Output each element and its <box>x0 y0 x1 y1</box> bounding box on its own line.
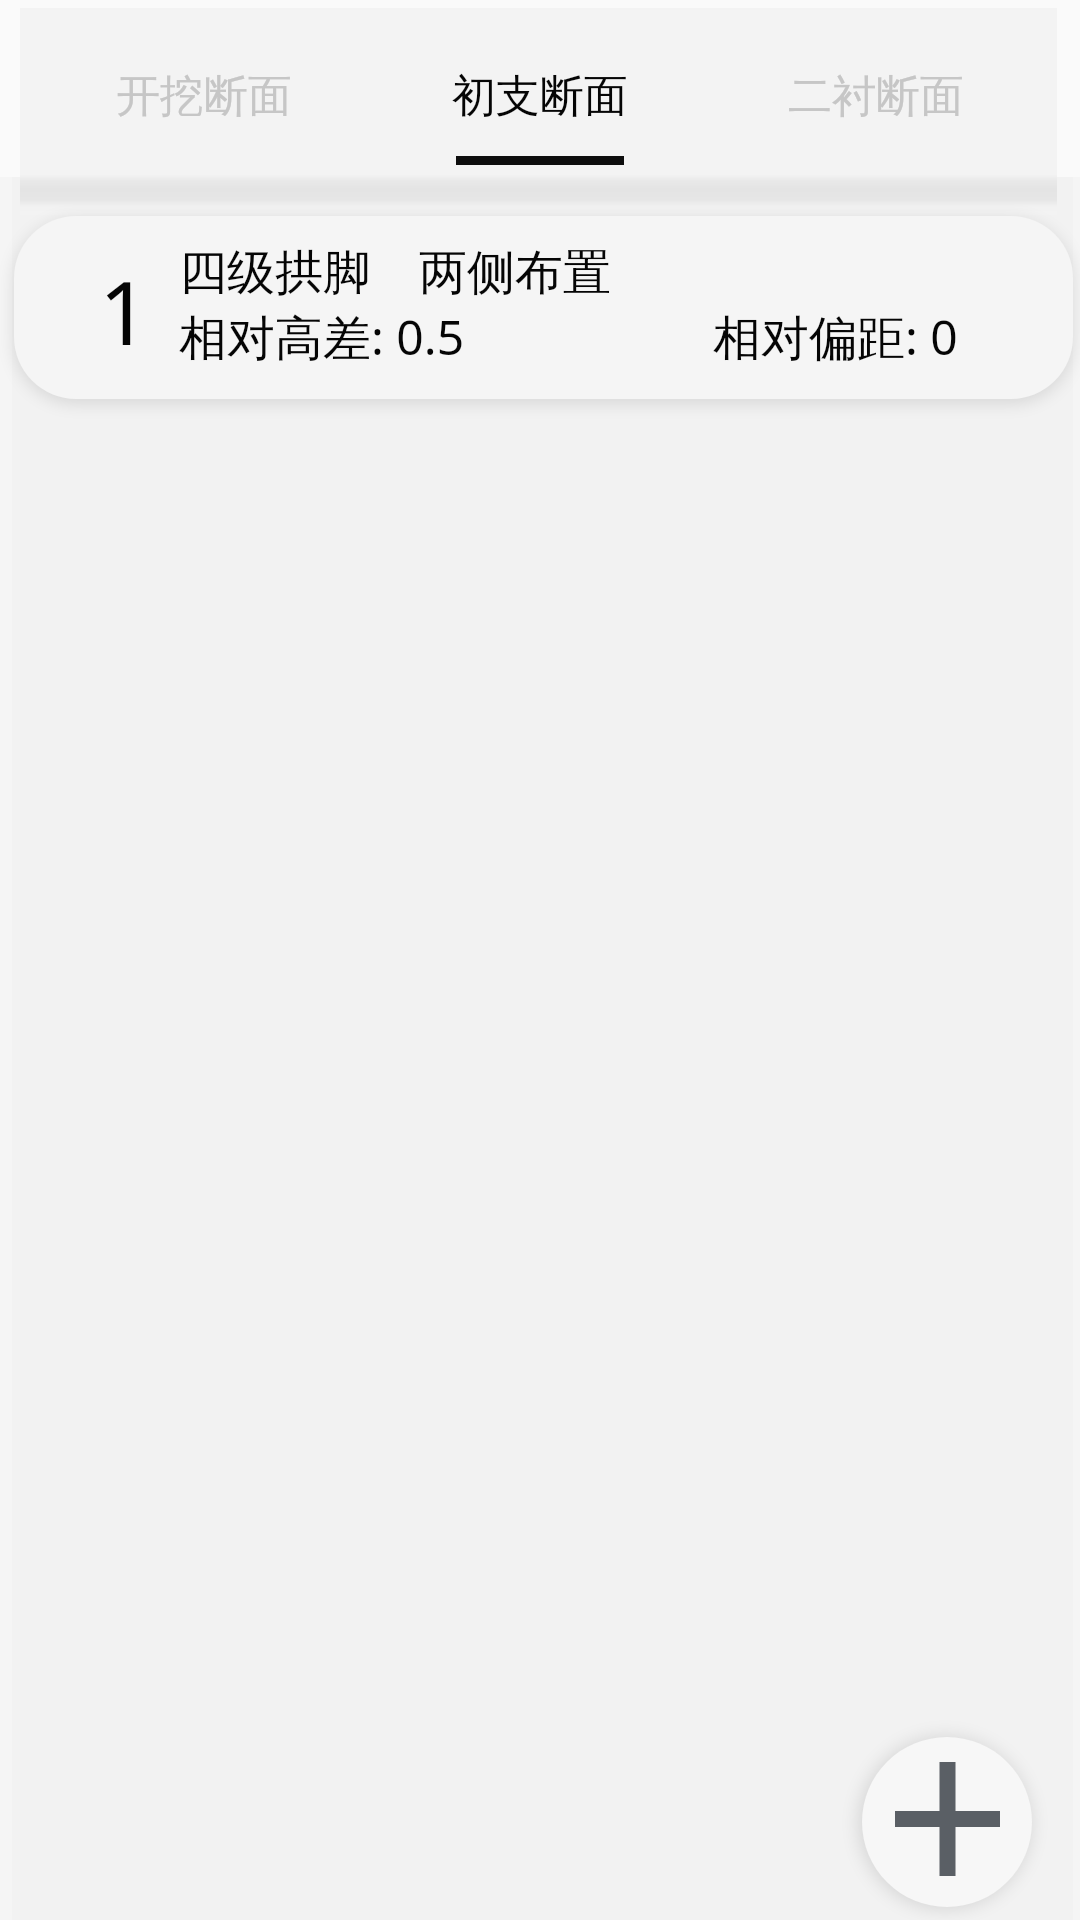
staticText: 1 <box>99 251 150 371</box>
staticText: 开挖断面 <box>116 69 292 124</box>
button[interactable]: 开挖断面 <box>36 8 372 177</box>
staticText: 二衬断面 <box>788 69 964 124</box>
button[interactable]: 二衬断面 <box>708 8 1044 177</box>
staticText: 相对高差: 0.5 <box>179 304 465 370</box>
button[interactable]: Add <box>862 1737 1032 1907</box>
button[interactable]: 1 <box>14 216 1073 399</box>
staticText: 初支断面 <box>452 69 628 124</box>
staticText: 相对偏距: 0 <box>713 304 958 370</box>
staticText: 四级拱脚 两侧布置 <box>179 238 611 304</box>
button[interactable]: 初支断面 <box>372 8 708 177</box>
